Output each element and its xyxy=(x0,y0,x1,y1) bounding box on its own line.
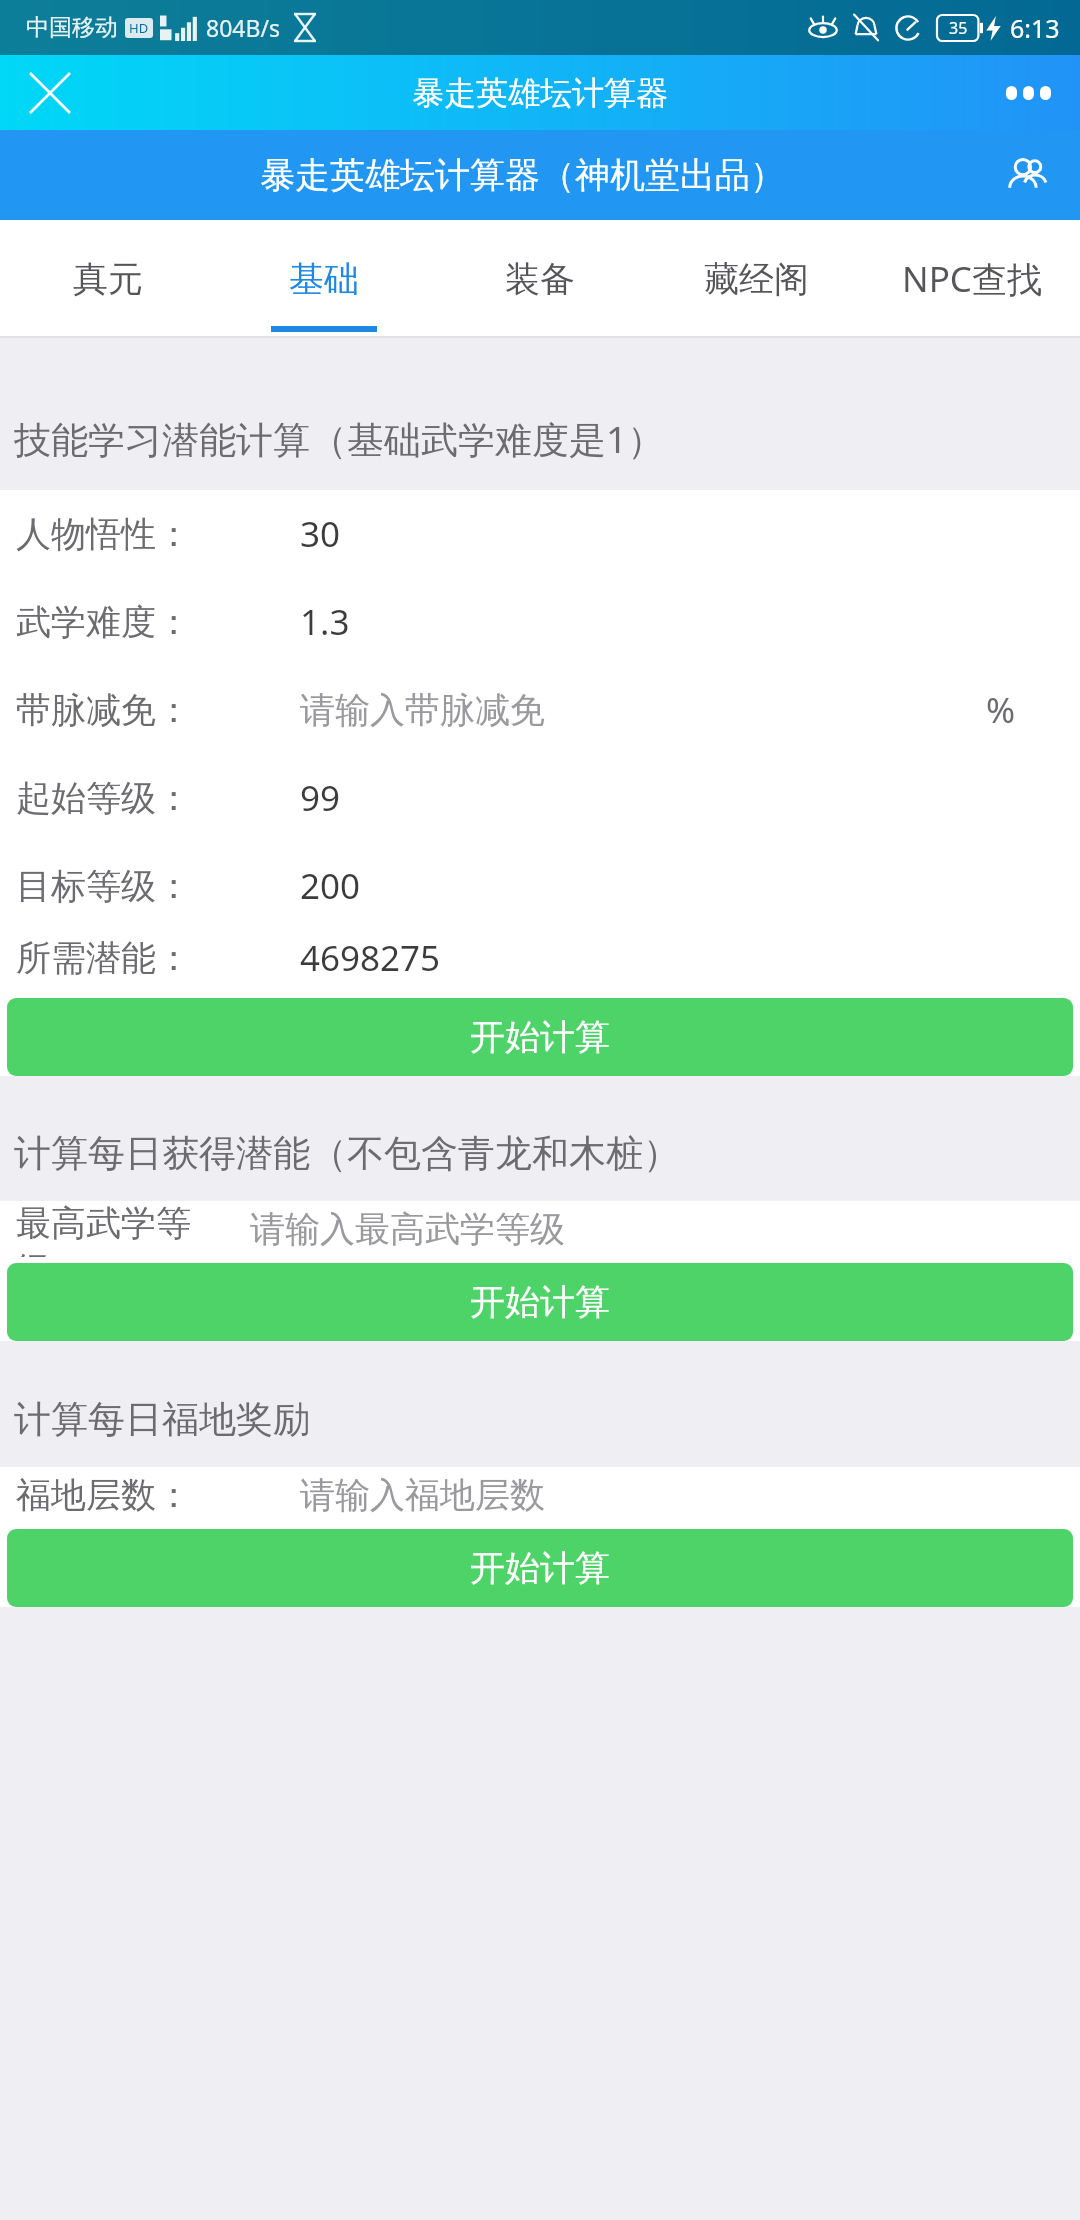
staticText: 技能学习潜能计算（基础武学难度是1） xyxy=(14,413,665,464)
staticText: 99 xyxy=(300,774,1080,822)
other: Eye comfort xyxy=(808,16,838,40)
staticText: 开始计算 xyxy=(470,1280,610,1324)
button[interactable]: 开始计算 xyxy=(7,1529,1073,1607)
staticText: 所需潜能： xyxy=(16,936,191,980)
button[interactable]: 所需潜能： xyxy=(0,930,1080,986)
staticText: 中国移动 xyxy=(26,13,118,42)
button[interactable]: 起始等级： xyxy=(0,754,1080,842)
staticText: 6:13 xyxy=(1010,11,1060,45)
staticText: NPC查找 xyxy=(902,255,1042,303)
button[interactable]: 带脉减免： xyxy=(0,666,1080,754)
staticText: 暴走英雄坛计算器 xyxy=(412,73,668,113)
other: Data saver xyxy=(894,14,922,42)
button[interactable]: 人物悟性： xyxy=(0,490,1080,578)
button[interactable]: 真元 xyxy=(0,220,216,338)
button[interactable]: Close xyxy=(12,55,88,130)
staticText: 1.3 xyxy=(300,598,1080,646)
button[interactable]: 基础 xyxy=(216,220,432,338)
staticText: 目标等级： xyxy=(16,864,191,908)
button[interactable]: 开始计算 xyxy=(7,998,1073,1076)
staticText: 最高武学等级： xyxy=(16,1201,250,1257)
button[interactable]: NPC查找 xyxy=(864,220,1080,338)
button[interactable]: 最高武学等级： xyxy=(0,1201,1080,1257)
staticText: 开始计算 xyxy=(470,1546,610,1590)
staticText: 4698275 xyxy=(300,934,1080,982)
staticText: 真元 xyxy=(73,257,143,301)
staticText: 暴走英雄坛计算器（神机堂出品） xyxy=(260,153,785,197)
other: Silent mode xyxy=(853,14,879,42)
staticText: 起始等级： xyxy=(16,776,191,820)
button[interactable]: 藏经阁 xyxy=(648,220,864,338)
button[interactable]: 武学难度： xyxy=(0,578,1080,666)
staticText: 请输入最高武学等级 xyxy=(250,1207,1080,1251)
staticText: 武学难度： xyxy=(16,600,191,644)
staticText: 请输入福地层数 xyxy=(300,1473,1080,1517)
staticText: 带脉减免： xyxy=(16,688,191,732)
staticText: % xyxy=(986,686,1016,734)
staticText: 藏经阁 xyxy=(704,257,809,301)
staticText: 开始计算 xyxy=(470,1015,610,1059)
staticText: 30 xyxy=(300,510,1080,558)
staticText: 804B/s xyxy=(206,12,280,43)
button[interactable]: 开始计算 xyxy=(7,1263,1073,1341)
button[interactable]: More options xyxy=(990,55,1066,130)
button[interactable]: Contacts xyxy=(988,137,1064,213)
staticText: 人物悟性： xyxy=(16,512,191,556)
staticText: 35 xyxy=(949,17,968,39)
button[interactable]: 福地层数： xyxy=(0,1467,1080,1523)
staticText: 装备 xyxy=(505,257,575,301)
button[interactable]: 装备 xyxy=(432,220,648,338)
staticText: 200 xyxy=(300,862,1080,910)
staticText: 基础 xyxy=(289,257,359,301)
staticText: 计算每日福地奖励 xyxy=(14,1396,310,1443)
button[interactable]: 目标等级： xyxy=(0,842,1080,930)
staticText: 计算每日获得潜能（不包含青龙和木桩） xyxy=(14,1130,680,1177)
staticText: HD xyxy=(129,19,149,37)
staticText: 请输入带脉减免 xyxy=(300,688,986,732)
staticText: 福地层数： xyxy=(16,1473,191,1517)
